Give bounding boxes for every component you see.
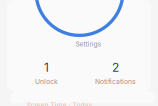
staticText: 1 <box>44 60 49 75</box>
staticText: 2 <box>112 60 119 75</box>
button[interactable]: 1 <box>12 60 81 86</box>
staticText: Settings <box>75 40 101 48</box>
staticText: Notifications <box>95 78 136 86</box>
staticText: Screen Time · Today <box>26 101 92 106</box>
staticText: Unlock <box>35 78 58 86</box>
button[interactable]: 2 <box>81 60 150 86</box>
